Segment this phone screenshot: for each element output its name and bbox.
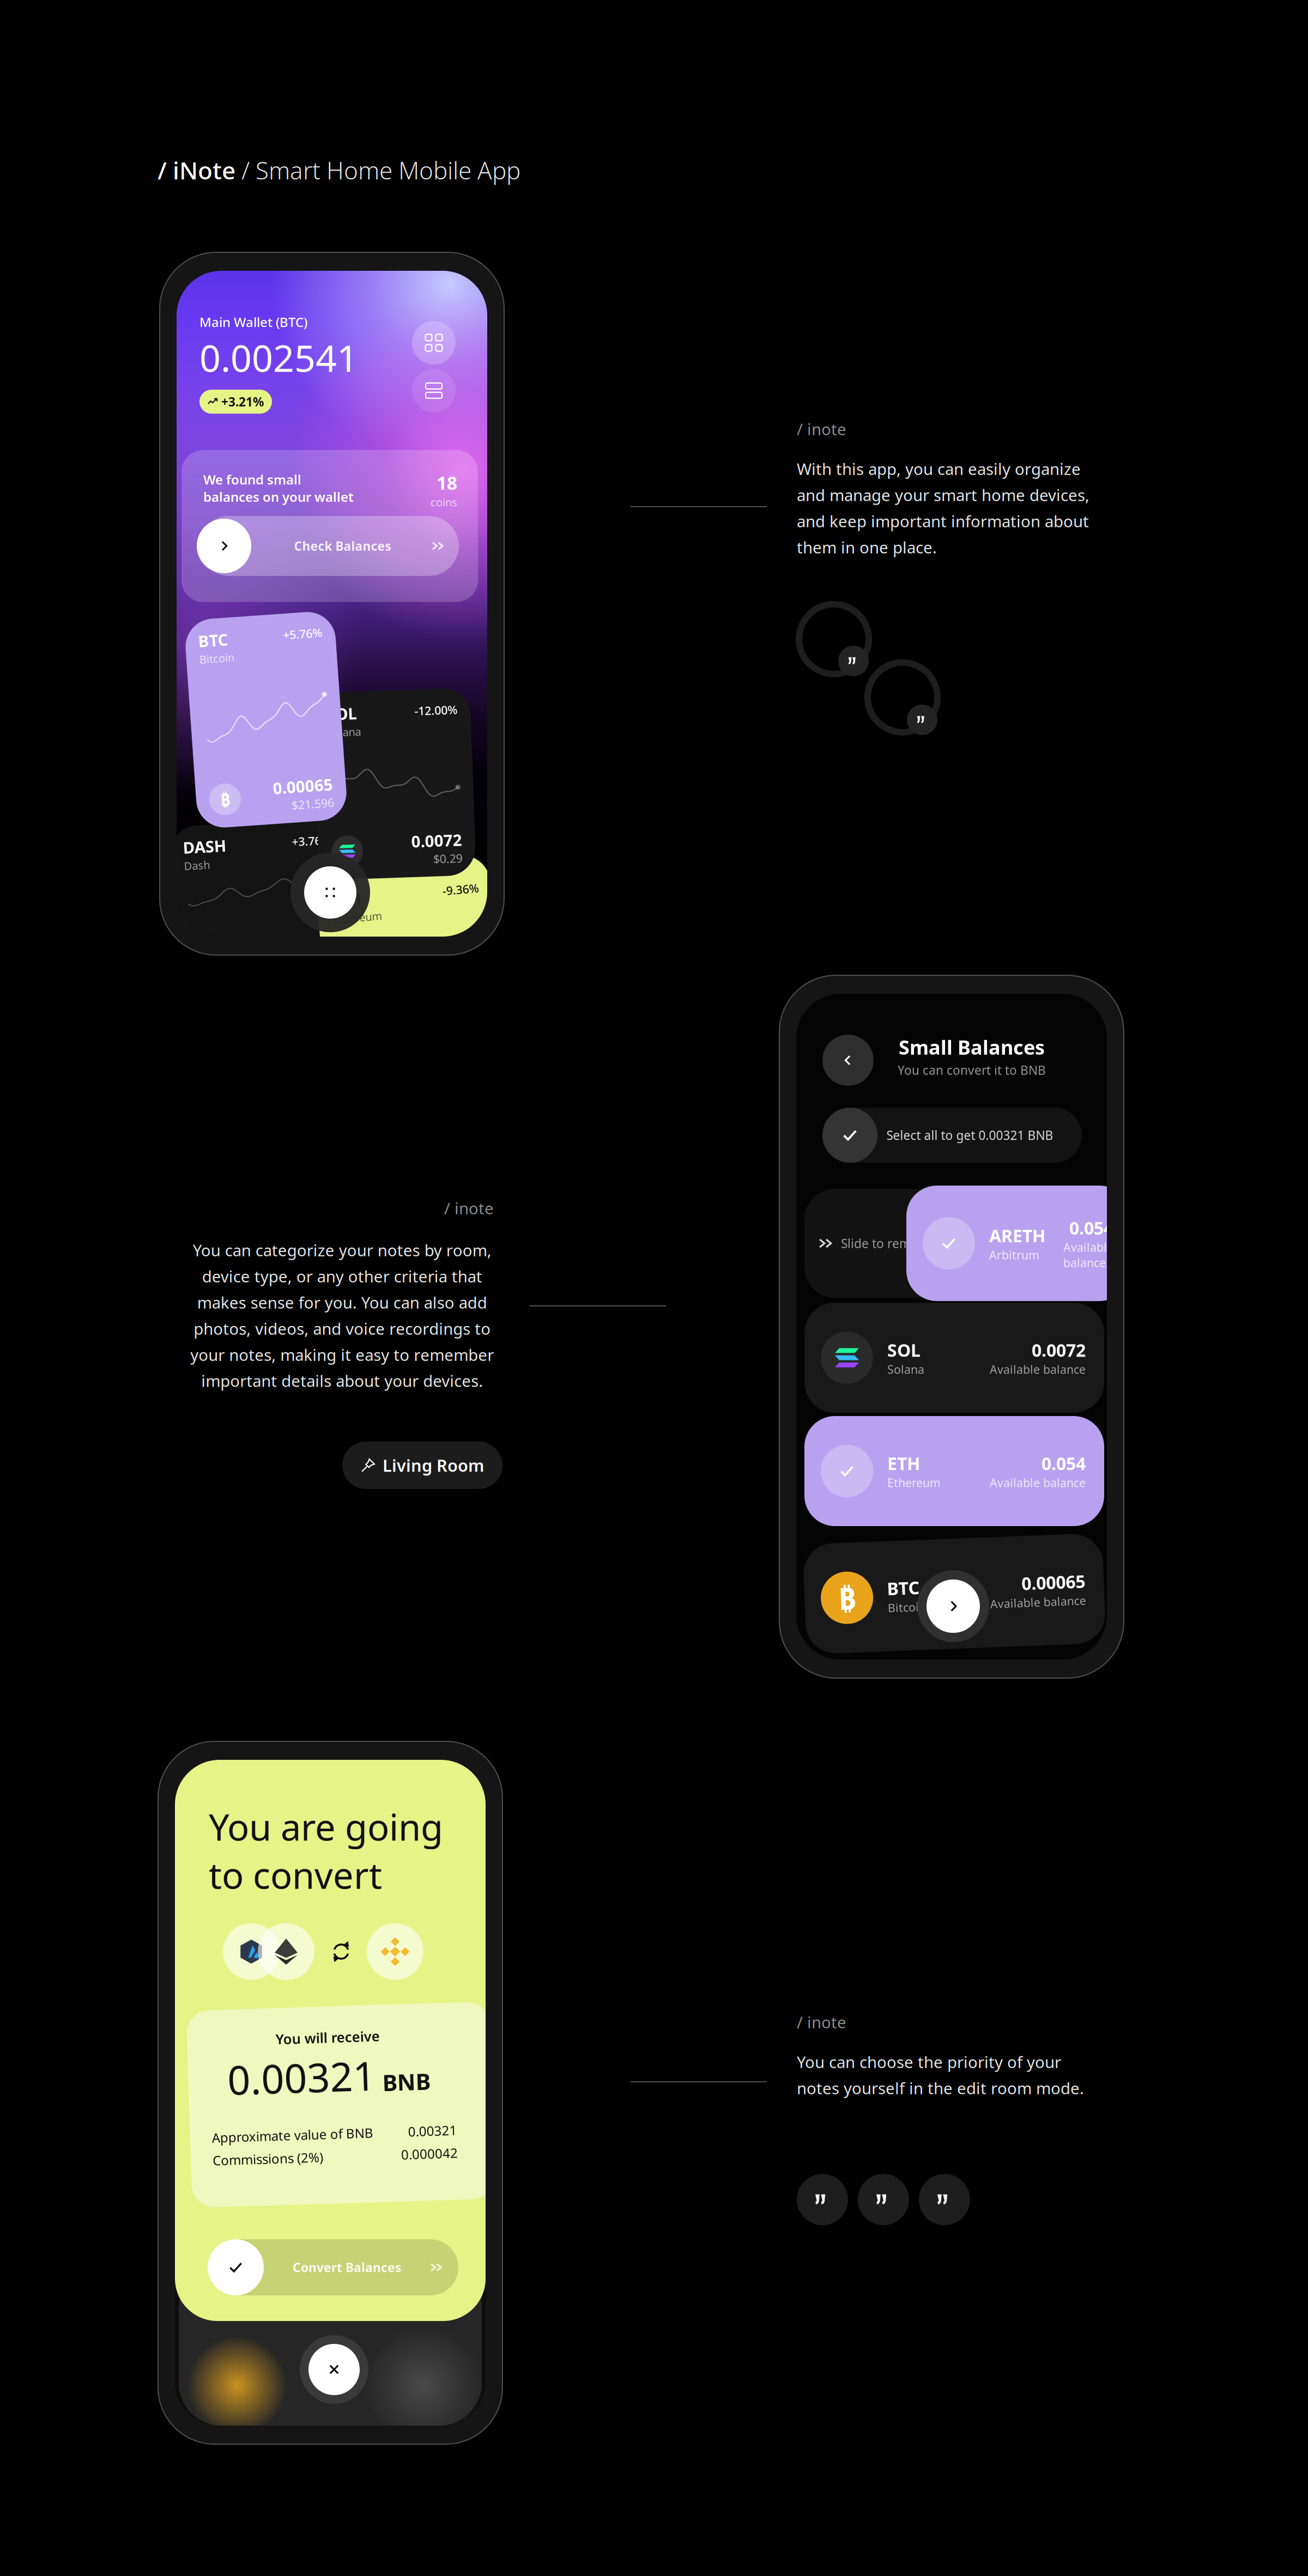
staticText: Select all to get 0.00321 BNB	[886, 1127, 1053, 1143]
staticText: / inote	[444, 1198, 494, 1219]
staticText: 0.00321	[407, 2125, 456, 2142]
staticText: 0.00065	[1022, 1574, 1086, 1598]
staticText: Dash	[185, 855, 211, 869]
staticText: Main Wallet (BTC)	[199, 313, 307, 331]
staticText: BNB	[383, 2069, 431, 2099]
staticText: 0.0072	[409, 831, 460, 853]
staticText: coins	[431, 495, 457, 509]
staticText: / Smart Home Mobile App	[241, 154, 520, 186]
staticText: $0.29	[431, 853, 460, 868]
staticText: ₿	[215, 785, 225, 808]
staticText: We found small balances on your wallet	[203, 471, 354, 505]
staticText: You can categorize your notes by room, d…	[190, 1240, 494, 1391]
staticText: Convert Balances	[293, 2259, 401, 2276]
button[interactable]: ₿	[804, 1539, 1104, 1649]
staticText: Solana	[329, 723, 363, 737]
staticText: 0.000042	[399, 2148, 456, 2165]
staticText: ETH	[887, 1452, 920, 1475]
staticText: Living Room	[383, 1454, 484, 1476]
staticText: / inote	[797, 418, 846, 440]
staticText: -12.00%	[417, 704, 460, 719]
staticText: +3.21%	[221, 393, 264, 410]
staticText: +5.76%	[289, 629, 328, 644]
staticText: / iNote	[158, 154, 241, 186]
staticText: SOL	[887, 1338, 921, 1362]
staticText: Available balance	[990, 1598, 1086, 1613]
staticText: ARETH	[989, 1224, 1045, 1247]
button[interactable]: Back	[822, 1035, 874, 1086]
button[interactable]: SOL	[804, 1303, 1104, 1413]
staticText: Small Balances	[899, 1034, 1045, 1060]
staticText: Check Balances	[294, 538, 391, 554]
staticText: You are going to convert	[209, 1802, 443, 1899]
staticText: Available balance	[1063, 1239, 1113, 1270]
staticText: DASH	[185, 833, 228, 854]
staticText: 18	[437, 471, 457, 495]
button[interactable]: List view	[412, 369, 456, 412]
button[interactable]: Check Balances	[199, 516, 459, 576]
staticText: Available balance	[990, 1362, 1086, 1377]
staticText: ₿	[838, 1573, 856, 1614]
staticText: Ethereum	[334, 906, 383, 921]
staticText: / inote	[797, 2012, 846, 2033]
staticText: 0.054	[1069, 1216, 1113, 1239]
button[interactable]: Reorder cards	[290, 853, 370, 932]
staticText: 0.002541	[199, 333, 358, 382]
button[interactable]: Close	[300, 2335, 368, 2404]
staticText: BTC	[887, 1574, 920, 1598]
staticText: Slide to remove	[841, 1235, 931, 1251]
staticText: With this app, you can easily organize a…	[797, 458, 1089, 558]
staticText: You can convert it to BNB	[898, 1062, 1046, 1078]
staticText: 0.054	[1041, 1452, 1086, 1475]
staticText: -9.36%	[445, 886, 482, 902]
staticText: Ethereum	[887, 1475, 941, 1490]
staticText: $21.596	[286, 799, 328, 815]
staticText: 0.0072	[1032, 1338, 1086, 1362]
staticText: BTC	[204, 626, 234, 647]
staticText: 0.00321	[228, 2049, 377, 2103]
staticText: 0.00065	[268, 778, 328, 799]
button[interactable]: Continue	[917, 1570, 989, 1642]
button[interactable]: ETH	[804, 1416, 1104, 1526]
staticText: +3.76%	[294, 836, 334, 851]
staticText: Available balance	[990, 1475, 1086, 1490]
staticText: Solana	[887, 1362, 924, 1377]
button[interactable]: Convert Balances	[208, 2239, 458, 2295]
staticText: Commissions (2%)	[211, 2148, 322, 2165]
staticText: ETH	[334, 884, 364, 906]
button[interactable]: Select all to get 0.00321 BNB	[822, 1108, 1082, 1163]
staticText: Bitcoin	[204, 648, 239, 662]
button[interactable]: Living Room	[342, 1442, 502, 1489]
staticText: Bitcoin	[887, 1598, 925, 1613]
staticText: Approximate value of BNB	[211, 2125, 372, 2142]
button[interactable]: Grid view	[412, 321, 456, 364]
staticText: You can choose the priority of your note…	[797, 2051, 1084, 2099]
staticText: SOL	[329, 701, 359, 722]
staticText: You will receive	[278, 2028, 382, 2046]
button[interactable]: ARETH	[906, 1186, 1130, 1301]
staticText: Arbitrum	[989, 1247, 1039, 1263]
